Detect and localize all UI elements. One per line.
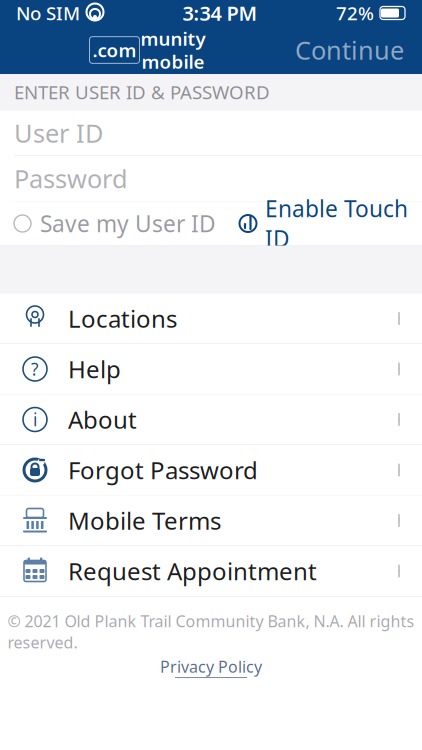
staticText: About xyxy=(68,404,137,435)
button[interactable]: i xyxy=(0,394,422,445)
staticText: i xyxy=(33,408,37,431)
staticText: ? xyxy=(31,357,39,380)
button[interactable]: Mobile Terms xyxy=(0,495,422,546)
staticText: 72% xyxy=(336,1,374,25)
button[interactable]: Password xyxy=(0,156,422,201)
button[interactable]: Forgot Password xyxy=(0,445,422,495)
button[interactable]: Request Appointment xyxy=(0,546,422,596)
button[interactable]: User ID xyxy=(0,110,422,156)
staticText: Password xyxy=(14,162,128,195)
staticText: 3:34 PM xyxy=(182,0,257,26)
staticText: .com xyxy=(92,38,136,62)
staticText: Locations xyxy=(68,303,177,334)
staticText: Privacy Policy xyxy=(160,656,262,677)
staticText: User ID xyxy=(14,116,103,150)
staticText: Enable Touch ID xyxy=(265,193,408,254)
staticText: munity xyxy=(140,26,205,51)
button[interactable]: Locations xyxy=(0,293,422,344)
button[interactable]: Continue xyxy=(295,33,422,67)
staticText: ENTER USER ID & PASSWORD xyxy=(14,80,270,104)
staticText: Save my User ID xyxy=(40,208,216,238)
staticText: © 2021 Old Plank Trail Community Bank, N… xyxy=(7,610,414,653)
staticText: No SIM xyxy=(16,1,80,25)
staticText: Help xyxy=(68,353,121,385)
staticText: Continue xyxy=(295,33,404,67)
button[interactable]: Enable Touch ID xyxy=(238,185,422,262)
staticText: Mobile Terms xyxy=(68,505,221,536)
button[interactable]: Save my User ID xyxy=(0,200,216,246)
button[interactable]: ? xyxy=(0,344,422,394)
button[interactable]: Privacy Policy xyxy=(160,656,262,678)
staticText: mobile xyxy=(141,49,204,74)
staticText: Forgot Password xyxy=(68,454,258,486)
staticText: Request Appointment xyxy=(68,555,317,587)
